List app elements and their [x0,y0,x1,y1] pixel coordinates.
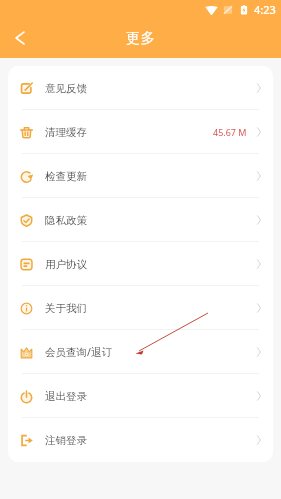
button[interactable]: 检查更新 [8,154,273,198]
button[interactable]: 隐私政策 [8,198,273,242]
staticText: 用户协议 [45,258,87,271]
staticText: 隐私政策 [45,214,87,227]
staticText: 意见反馈 [45,82,87,95]
staticText: 注销登录 [45,434,87,447]
button[interactable]: 退出登录 [8,374,273,418]
staticText: 会员查询/退订 [45,345,112,359]
button[interactable]: 关于我们 [8,286,273,330]
button[interactable]: 会员查询/退订 [8,330,273,374]
staticText: 更多 [126,29,155,47]
staticText: 关于我们 [45,302,87,315]
staticText: 清理缓存 [45,126,87,139]
button[interactable]: 用户协议 [8,242,273,286]
button[interactable]: Back [0,18,40,58]
staticText: 45.67 M [213,126,247,138]
button[interactable]: 意见反馈 [8,66,273,110]
staticText: 检查更新 [45,170,87,183]
button[interactable]: 注销登录 [8,418,273,462]
staticText: 退出登录 [45,390,87,403]
staticText: 4:23 [254,2,276,17]
button[interactable]: 清理缓存 [8,110,273,154]
